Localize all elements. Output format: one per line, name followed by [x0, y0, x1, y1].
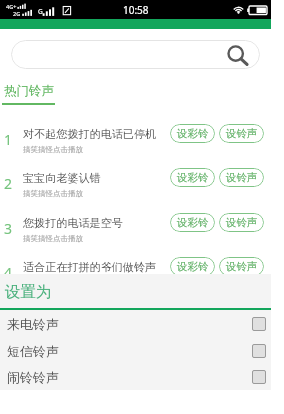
- staticText: 设铃声: [226, 260, 258, 273]
- button[interactable]: 设铃声: [219, 257, 264, 276]
- staticText: 设彩铃: [177, 260, 209, 273]
- staticText: 闹铃铃声: [7, 369, 59, 385]
- button[interactable]: 设彩铃: [170, 213, 215, 232]
- staticText: 搞笑搞怪点击播放: [23, 145, 83, 154]
- staticText: 搞笑搞怪点击播放: [23, 278, 83, 287]
- button[interactable]: 设彩铃: [170, 168, 215, 187]
- staticText: 来电铃声: [7, 316, 59, 332]
- staticText: 设铃声: [226, 171, 258, 184]
- button[interactable]: 设铃声: [219, 168, 264, 187]
- staticText: 设置为: [5, 282, 52, 302]
- staticText: 短信铃声: [7, 343, 59, 359]
- staticText: 宝宝向老婆认错: [23, 171, 101, 185]
- staticText: 2: [4, 174, 13, 193]
- button[interactable]: 设彩铃: [170, 124, 215, 143]
- button[interactable]: Search: [11, 40, 260, 69]
- staticText: 适合正在打拼的爷们做铃声: [23, 260, 157, 274]
- staticText: 搞笑搞怪点击播放: [23, 189, 83, 198]
- staticText: 设彩铃: [177, 171, 209, 184]
- button[interactable]: 设铃声: [219, 213, 264, 232]
- staticText: 您拨打的电话是空号: [23, 216, 123, 230]
- staticText: 设铃声: [226, 127, 258, 140]
- button[interactable]: 来电铃声: [0, 310, 271, 337]
- button[interactable]: 设彩铃: [170, 257, 215, 276]
- staticText: 4G+: [6, 3, 17, 10]
- staticText: 热门铃声: [4, 83, 54, 99]
- staticText: 搞笑搞怪点击播放: [23, 234, 83, 243]
- staticText: 对不起您拨打的电话已停机: [23, 127, 157, 141]
- staticText: 2G: [13, 10, 21, 17]
- staticText: G: [38, 7, 43, 16]
- staticText: 设彩铃: [177, 127, 209, 140]
- staticText: 4: [4, 263, 13, 282]
- staticText: 10:58: [123, 3, 149, 17]
- staticText: 3: [4, 219, 13, 238]
- button[interactable]: 短信铃声: [0, 337, 271, 364]
- button[interactable]: 1: [0, 119, 271, 163]
- button[interactable]: 闹铃铃声: [0, 364, 271, 390]
- button[interactable]: 热门铃声: [2, 83, 55, 105]
- staticText: 设彩铃: [177, 216, 209, 229]
- staticText: 1: [4, 130, 13, 149]
- staticText: 设铃声: [226, 216, 258, 229]
- button[interactable]: 3: [0, 208, 271, 252]
- button[interactable]: 2: [0, 163, 271, 207]
- button[interactable]: 设铃声: [219, 124, 264, 143]
- button[interactable]: 4: [0, 252, 271, 296]
